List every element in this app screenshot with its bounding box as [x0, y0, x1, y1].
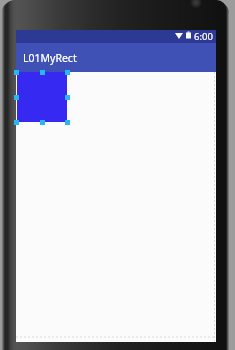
staticText: 6:00: [194, 30, 213, 43]
button[interactable]: [17, 72, 67, 122]
staticText: L01MyRect: [23, 51, 77, 65]
button[interactable]: L01MyRect: [16, 43, 216, 72]
